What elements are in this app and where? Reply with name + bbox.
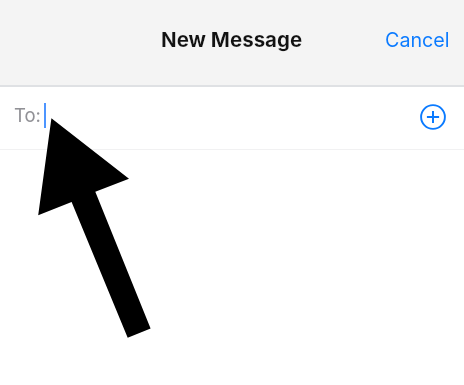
staticText: To: — [14, 104, 41, 126]
button[interactable]: Add contact — [420, 104, 446, 130]
staticText: New Message — [161, 27, 303, 52]
button[interactable]: Cancel — [385, 28, 450, 52]
button[interactable]: To: — [0, 87, 464, 149]
staticText: Cancel — [385, 28, 450, 52]
